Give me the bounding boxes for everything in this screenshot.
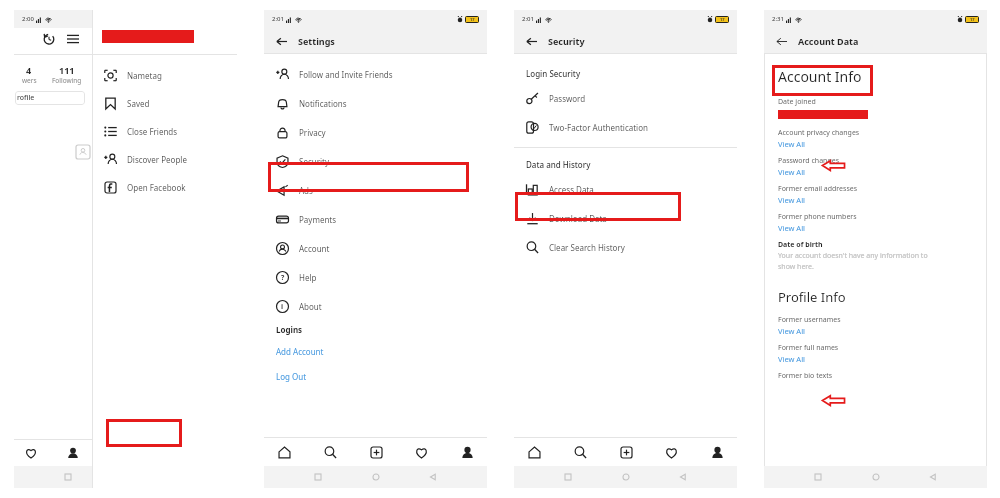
button[interactable]: View All <box>778 325 806 337</box>
button[interactable]: Back <box>773 33 789 49</box>
button[interactable]: View All <box>778 194 806 206</box>
staticText: 2:31 <box>772 15 784 23</box>
button[interactable]: View All <box>778 222 806 234</box>
staticText: 17 <box>720 17 725 22</box>
staticText: 111 <box>59 64 75 76</box>
button[interactable]: Payments <box>264 205 487 234</box>
staticText: Your account doesn't have any informatio… <box>778 251 928 271</box>
button[interactable]: View All <box>778 353 806 365</box>
button[interactable]: View All <box>778 166 806 178</box>
button[interactable]: ? <box>264 263 487 292</box>
staticText: View All <box>778 139 806 149</box>
staticText: Former usernames <box>778 315 841 325</box>
button[interactable]: Activity <box>22 444 40 462</box>
staticText: i <box>281 302 284 312</box>
button[interactable]: Access Data <box>514 175 737 204</box>
button[interactable]: i <box>264 292 487 321</box>
staticText: Saved <box>127 98 150 109</box>
button[interactable]: Back <box>523 33 539 49</box>
button[interactable]: Settings <box>100 440 150 466</box>
button[interactable]: View All <box>778 138 806 150</box>
button[interactable]: Profile <box>705 440 729 464</box>
button[interactable]: rofile <box>15 91 85 105</box>
staticText: Data and History <box>526 159 591 170</box>
staticText: Former phone numbers <box>778 212 857 222</box>
staticText: Date joined <box>778 97 816 107</box>
button[interactable]: Privacy <box>264 118 487 147</box>
button[interactable]: Follow and Invite Friends <box>264 60 487 89</box>
button[interactable]: Clear Search History <box>514 233 737 262</box>
staticText: Account privacy changes <box>778 128 860 138</box>
staticText: Clear Search History <box>549 242 625 253</box>
staticText: Follow and Invite Friends <box>299 69 393 80</box>
button[interactable]: Add Account <box>264 346 487 363</box>
staticText: Add Account <box>276 346 324 357</box>
button[interactable]: Saved <box>92 89 237 117</box>
staticText: 17 <box>970 17 975 22</box>
button[interactable]: Nametag <box>92 61 237 89</box>
button[interactable]: Account <box>264 234 487 263</box>
staticText: Date of birth <box>778 240 823 250</box>
staticText: Open Facebook <box>127 182 186 193</box>
button[interactable]: Close Friends <box>92 117 237 145</box>
staticText: Former full names <box>778 343 839 353</box>
staticText: Account Data <box>798 35 859 47</box>
button[interactable]: Activity <box>409 440 433 464</box>
button[interactable]: Profile <box>64 444 82 462</box>
staticText: Notifications <box>299 98 347 109</box>
staticText: Former email addresses <box>778 184 858 194</box>
staticText: Security <box>299 156 330 167</box>
staticText: Close Friends <box>127 126 178 137</box>
staticText: Former bio texts <box>778 371 833 381</box>
staticText: Access Data <box>549 184 594 195</box>
staticText: Payments <box>299 214 337 225</box>
staticText: Help <box>299 272 317 283</box>
staticText: ? <box>281 273 285 283</box>
button[interactable]: Home <box>522 440 546 464</box>
staticText: Nametag <box>127 70 162 81</box>
staticText: Settings <box>298 35 335 47</box>
staticText: Logins <box>276 324 303 335</box>
button[interactable]: Notifications <box>264 89 487 118</box>
button[interactable]: Log Out <box>264 371 487 388</box>
button[interactable]: Activity <box>659 440 683 464</box>
button[interactable]: Archive <box>40 30 58 48</box>
staticText: 17 <box>470 17 475 22</box>
staticText: View All <box>778 354 806 364</box>
button[interactable]: Password <box>514 84 737 113</box>
staticText: Login Security <box>526 68 581 79</box>
staticText: Privacy <box>299 127 326 138</box>
button[interactable]: Back <box>273 33 289 49</box>
button[interactable]: Discover People <box>92 145 237 173</box>
button[interactable]: Search <box>568 440 592 464</box>
button[interactable]: Add post <box>364 440 388 464</box>
button[interactable]: Ads <box>264 176 487 205</box>
staticText: Password changes <box>778 156 840 166</box>
staticText: View All <box>778 223 806 233</box>
button[interactable]: Profile <box>455 440 479 464</box>
button[interactable]: Add post <box>614 440 638 464</box>
button[interactable]: Security <box>264 147 487 176</box>
staticText: Profile Info <box>778 288 846 306</box>
staticText: About <box>299 301 322 312</box>
button[interactable]: Menu <box>64 30 82 48</box>
staticText: Two-Factor Authentication <box>549 122 648 133</box>
button[interactable]: Search <box>318 440 342 464</box>
staticText: wers <box>22 76 37 85</box>
staticText: Password <box>549 93 586 104</box>
staticText: View All <box>778 195 806 205</box>
button[interactable]: Download Data <box>514 204 737 233</box>
staticText: Log Out <box>276 371 307 382</box>
staticText: 2:00 <box>22 15 34 23</box>
staticText: rofile <box>17 93 35 103</box>
staticText: 4 <box>26 64 32 76</box>
button[interactable]: Home <box>272 440 296 464</box>
staticText: 2:01 <box>272 15 284 23</box>
button[interactable]: Two-Factor Authentication <box>514 113 737 142</box>
staticText: 2:01 <box>522 15 534 23</box>
button[interactable]: Open Facebook <box>92 173 237 201</box>
staticText: Security <box>548 35 585 47</box>
staticText: View All <box>778 326 806 336</box>
